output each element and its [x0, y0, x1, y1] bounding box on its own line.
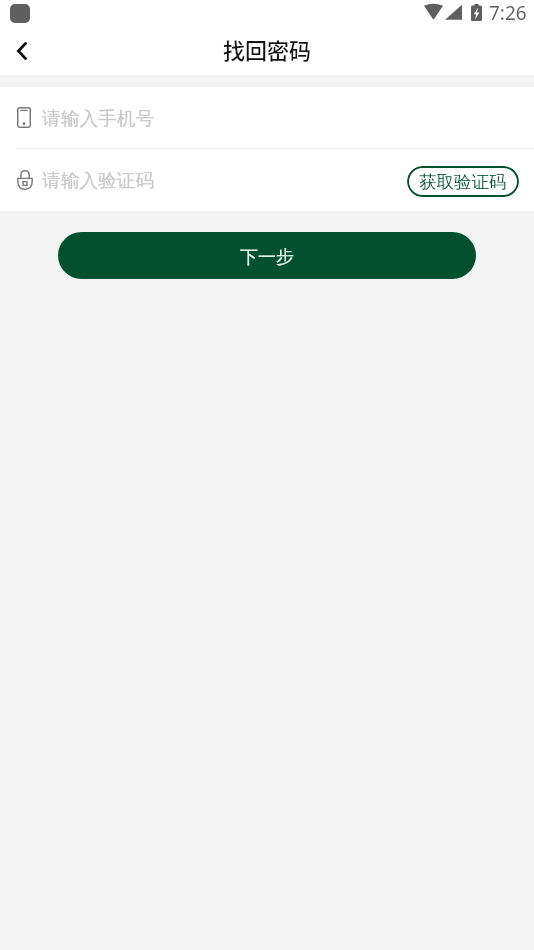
button[interactable]: 下一步 — [58, 232, 476, 279]
button[interactable]: Back — [0, 30, 45, 75]
staticText: 请输入验证码 — [42, 169, 406, 193]
staticText: 获取验证码 — [419, 171, 507, 193]
button[interactable]: 获取验证码 — [407, 166, 519, 197]
button[interactable]: 请输入验证码 — [0, 149, 534, 211]
staticText: 找回密码 — [223, 33, 312, 65]
staticText: 7:26 — [489, 0, 527, 26]
staticText: 请输入手机号 — [42, 107, 155, 131]
button[interactable]: 请输入手机号 — [0, 87, 534, 148]
staticText: 下一步 — [240, 246, 294, 269]
